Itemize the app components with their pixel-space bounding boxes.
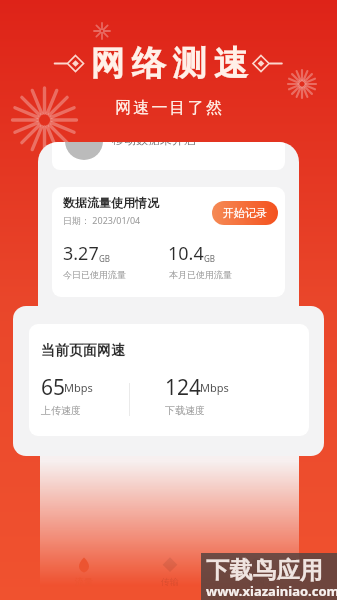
staticText: 上传速度 xyxy=(41,404,81,417)
staticText: 移动数据未开启 xyxy=(112,142,196,147)
staticText: 网络测速 xyxy=(87,42,251,85)
staticText: Mbps xyxy=(64,380,93,395)
staticText: 下载鸟应用 xyxy=(206,556,324,585)
staticText: 3.27 xyxy=(63,241,99,266)
staticText: Mbps xyxy=(200,380,229,395)
staticText: 日期： 2023/01/04 xyxy=(63,214,141,226)
staticText: GB xyxy=(99,253,111,264)
staticText: 流量 xyxy=(75,576,93,587)
button[interactable]: 流量 xyxy=(40,557,127,587)
staticText: www.xiazainiao.com xyxy=(206,582,337,600)
button[interactable]: 我的 xyxy=(213,557,299,587)
staticText: 开始记录 xyxy=(223,206,267,220)
button[interactable]: 传输 xyxy=(127,557,213,587)
staticText: 今日已使用流量 xyxy=(63,269,126,280)
staticText: 传输 xyxy=(161,576,179,587)
staticText: 当前页面网速 xyxy=(41,342,125,360)
staticText: 本月已使用流量 xyxy=(169,269,232,280)
staticText: 124 xyxy=(165,373,202,402)
staticText: 网速一目了然 xyxy=(115,98,225,118)
staticText: 65 xyxy=(41,373,66,402)
staticText: 我的 xyxy=(247,576,265,587)
staticText: GB xyxy=(204,253,216,264)
staticText: 下载速度 xyxy=(165,404,205,417)
staticText: 数据流量使用情况 xyxy=(63,195,159,210)
staticText: 10.4 xyxy=(168,241,204,266)
button[interactable]: 开始记录 xyxy=(212,201,278,225)
